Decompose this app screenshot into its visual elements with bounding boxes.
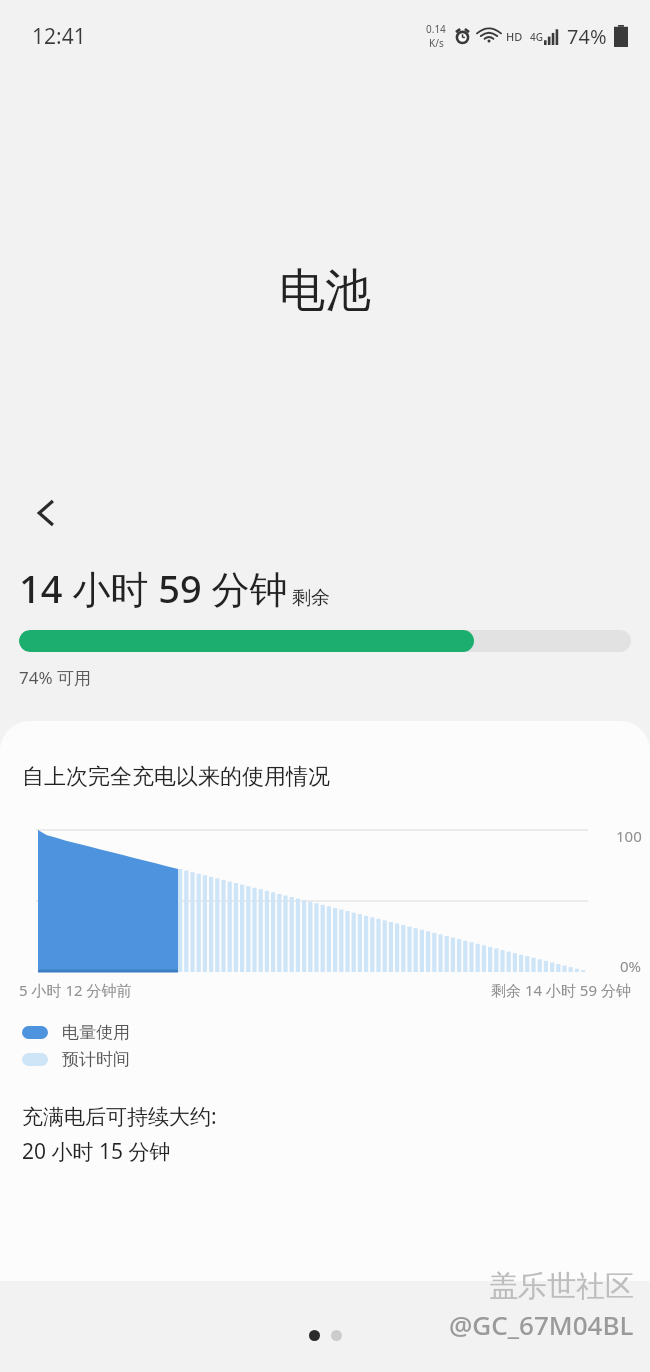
staticText: 100 [616, 826, 642, 846]
staticText: HD [506, 29, 523, 44]
staticText: @GC_67M04BL [449, 1307, 634, 1342]
staticText: 剩余 14 小时 59 分钟 [491, 980, 631, 1000]
button[interactable]: 预计时间 [22, 1049, 130, 1070]
staticText: 0% [620, 956, 642, 976]
staticText: 12:41 [32, 22, 86, 51]
staticText: 14 小时 59 分钟 [19, 562, 288, 614]
staticText: 4G [530, 30, 543, 44]
button[interactable]: 电量使用 [22, 1022, 130, 1043]
staticText: 0.14 [426, 22, 446, 36]
staticText: 74% [567, 23, 607, 50]
staticText: 剩余 [292, 586, 330, 610]
staticText: 电池 [279, 262, 371, 320]
staticText: 自上次完全充电以来的使用情况 [22, 763, 330, 791]
staticText: K/s [429, 36, 444, 50]
button[interactable]: Page 1 [309, 1330, 320, 1341]
staticText: 5 小时 12 分钟前 [19, 980, 132, 1000]
button[interactable]: Page 2 [331, 1330, 342, 1341]
staticText: 盖乐世社区 [489, 1268, 634, 1305]
staticText: 充满电后可持续大约: [22, 1102, 217, 1131]
button[interactable] [19, 630, 631, 652]
staticText: 74% 可用 [19, 666, 91, 689]
staticText: 20 小时 15 分钟 [22, 1137, 171, 1166]
staticText: 电量使用 [62, 1022, 130, 1043]
button[interactable]: Back [24, 490, 70, 536]
staticText: 预计时间 [62, 1049, 130, 1070]
